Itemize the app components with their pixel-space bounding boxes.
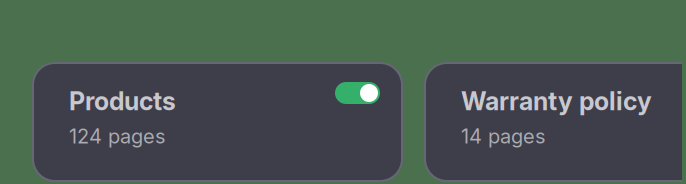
staticText: 124 pages (69, 124, 165, 148)
button[interactable]: Products (33, 63, 402, 181)
staticText: Warranty policy (461, 86, 652, 116)
button[interactable]: Warranty policy (425, 63, 686, 181)
staticText: Products (69, 86, 176, 116)
staticText: 14 pages (461, 124, 545, 148)
